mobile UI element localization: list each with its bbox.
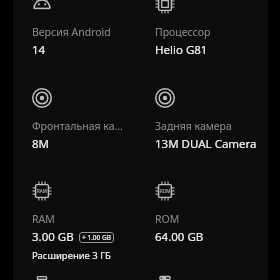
staticText: 3.00 GB [32,229,74,245]
staticText: 8M [32,136,50,152]
staticText: Helio G81 [155,42,208,58]
staticText: ROM [160,188,171,194]
button[interactable]: RAM [32,181,140,262]
button[interactable]: Display [140,276,268,280]
staticText: Задняя камера [155,119,232,133]
staticText: 14 [32,42,46,58]
button[interactable]: Battery [13,276,140,280]
button[interactable]: Front camera [32,88,140,152]
staticText: Расширение 3 ГБ [32,249,111,262]
staticText: 13M DUAL Camera [155,136,257,152]
button[interactable]: ROM [155,181,268,245]
staticText: RAM [37,188,47,194]
staticText: Процессор [155,25,211,39]
staticText: Версия Android [32,25,111,39]
button[interactable]: Processor [155,0,268,58]
staticText: 64.00 GB [155,229,204,245]
staticText: + 1.00 GB [82,233,111,242]
button[interactable]: Android version [32,0,140,58]
staticText: RAM [32,212,55,226]
button[interactable]: Rear camera [155,88,268,152]
staticText: ROM [155,212,180,226]
staticText: Фронтальная ка… [32,119,123,133]
